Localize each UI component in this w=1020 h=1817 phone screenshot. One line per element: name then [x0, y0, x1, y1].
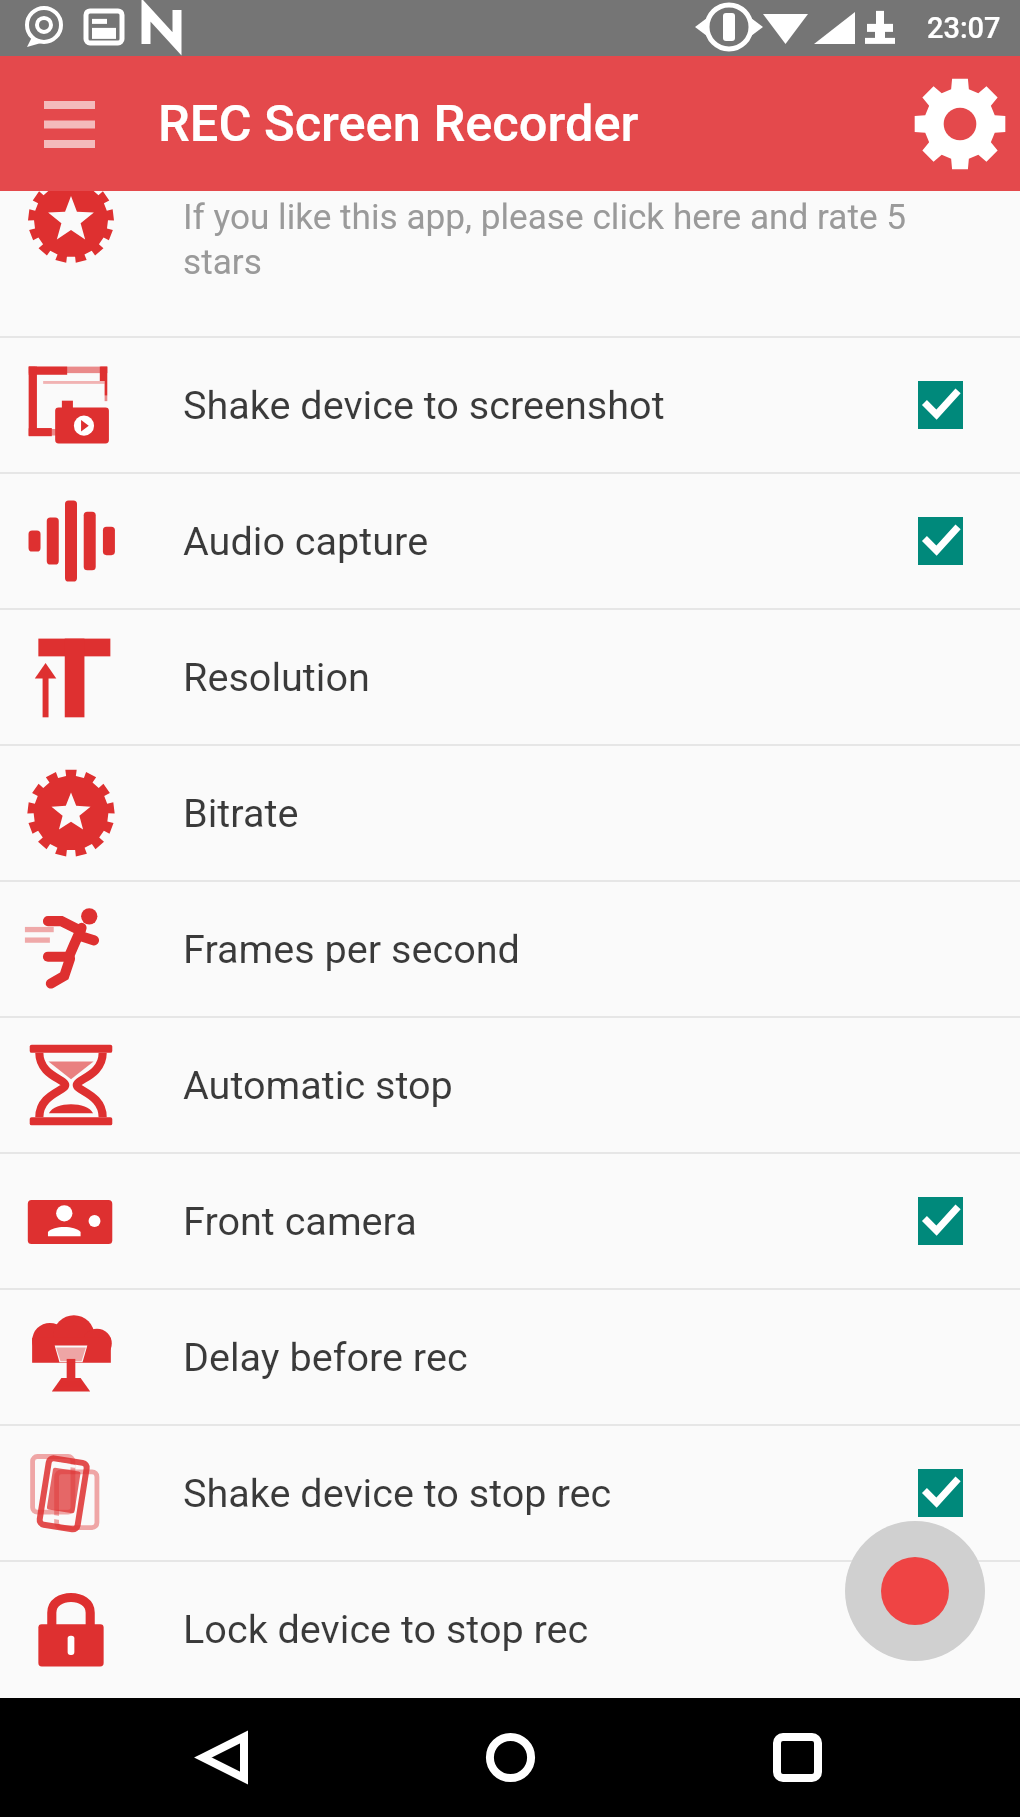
button[interactable]: Lock device to stop rec — [0, 1562, 1020, 1696]
button[interactable]: Audio capture — [0, 474, 1020, 608]
staticText: Resolution — [183, 654, 370, 700]
staticText: Delay before rec — [183, 1334, 468, 1380]
staticText: Audio capture — [183, 518, 429, 564]
button[interactable]: Shake device to stop rec — [0, 1426, 1020, 1560]
button[interactable]: Automatic stop — [0, 1018, 1020, 1152]
button[interactable]: Delay before rec — [0, 1290, 1020, 1424]
button[interactable]: If you like this app, please click here … — [0, 191, 1020, 336]
staticText: Shake device to stop rec — [183, 1470, 612, 1516]
button[interactable]: Menu — [18, 73, 120, 175]
staticText: Frames per second — [183, 926, 520, 972]
staticText: Shake device to screenshot — [183, 382, 665, 428]
staticText: 23:07 — [927, 11, 1001, 45]
button[interactable]: Frames per second — [0, 882, 1020, 1016]
button[interactable]: Resolution — [0, 610, 1020, 744]
staticText: Lock device to stop rec — [183, 1606, 589, 1652]
button[interactable]: Shake device to screenshot — [0, 338, 1020, 472]
button[interactable]: Home — [436, 1698, 584, 1817]
button[interactable]: Back — [149, 1698, 297, 1817]
button[interactable]: Record — [845, 1521, 985, 1661]
staticText: If you like this app, please click here … — [183, 196, 907, 283]
button[interactable]: Settings — [908, 72, 1012, 176]
staticText: Automatic stop — [183, 1062, 453, 1108]
staticText: REC Screen Recorder — [158, 94, 639, 153]
button[interactable]: Bitrate — [0, 746, 1020, 880]
button[interactable]: Recents — [723, 1698, 871, 1817]
button[interactable]: Front camera — [0, 1154, 1020, 1288]
staticText: Bitrate — [183, 790, 299, 836]
staticText: Front camera — [183, 1198, 417, 1244]
